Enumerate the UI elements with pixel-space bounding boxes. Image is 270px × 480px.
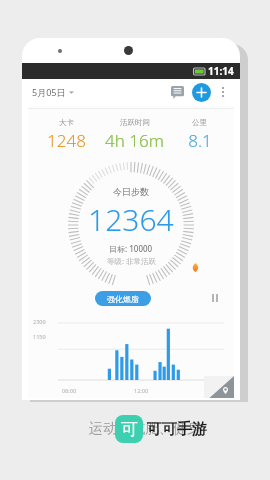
button[interactable]: 公里 [171, 118, 228, 152]
staticText: 4h 16m [105, 129, 164, 152]
button[interactable]: 可 [115, 400, 207, 458]
staticText: 今日步数 [113, 186, 149, 197]
staticText: 1248 [47, 129, 86, 152]
staticText: 12364 [88, 199, 174, 240]
button[interactable]: 强化燃脂 [95, 291, 151, 306]
staticText: 可 [121, 419, 138, 440]
button[interactable]: 活跃时间 [98, 118, 171, 152]
staticText: 11:14 [208, 64, 234, 78]
staticText: 运动、减肥、健身 [89, 420, 201, 438]
button[interactable]: More options [214, 83, 232, 101]
staticText: 等级: 非常活跃 [107, 256, 156, 266]
button[interactable]: Pause [208, 291, 222, 305]
staticText: 大卡 [59, 118, 74, 127]
button[interactable]: Messages [167, 82, 187, 102]
staticText: 目标: 10000 [109, 243, 153, 254]
button[interactable]: Map [204, 376, 234, 398]
staticText: 可可手游 [147, 420, 207, 439]
staticText: 06:00 [62, 387, 77, 394]
button[interactable]: 5月05日 [30, 84, 76, 100]
staticText: 公里 [192, 118, 207, 127]
button[interactable]: 大卡 [34, 118, 98, 152]
button[interactable]: Add [192, 83, 211, 102]
staticText: 18:00 [205, 387, 220, 394]
staticText: 活跃时间 [120, 118, 150, 127]
staticText: 8.1 [188, 129, 212, 152]
staticText: 强化燃脂 [107, 294, 139, 304]
staticText: 12:00 [134, 387, 149, 394]
staticText: 2300 [33, 318, 46, 325]
staticText: 1150 [33, 333, 46, 340]
staticText: 5月05日 [32, 86, 66, 98]
